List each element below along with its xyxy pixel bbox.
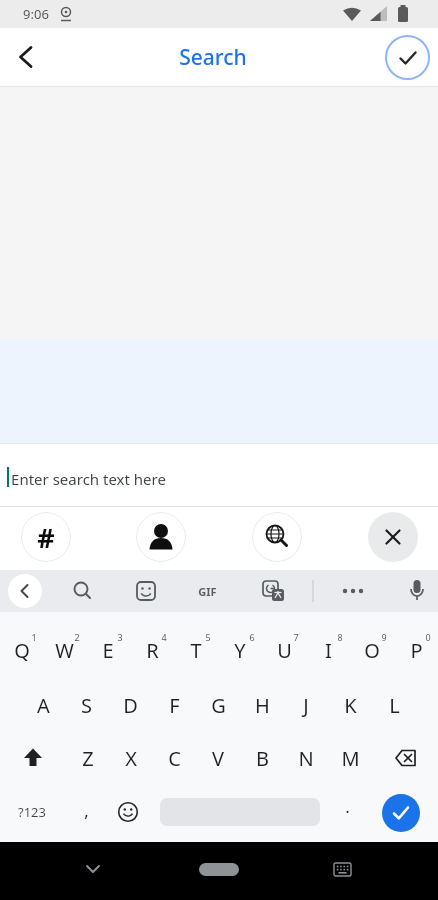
staticText: T: [190, 637, 202, 664]
staticText: .: [345, 795, 350, 818]
staticText: J: [303, 692, 309, 719]
staticText: N: [298, 745, 314, 772]
staticText: Q: [14, 637, 30, 664]
staticText: #: [37, 519, 55, 556]
staticText: 8: [337, 631, 343, 643]
staticText: 7: [293, 631, 299, 643]
staticText: Y: [234, 637, 246, 664]
staticText: ,: [84, 799, 89, 822]
staticText: 2: [74, 631, 80, 643]
staticText: 4: [161, 631, 167, 643]
staticText: K: [344, 692, 357, 719]
staticText: 0: [425, 631, 431, 643]
staticText: H: [255, 692, 270, 719]
staticText: E: [102, 637, 114, 664]
staticText: 3: [117, 631, 123, 643]
staticText: D: [123, 692, 138, 719]
staticText: I: [325, 637, 332, 664]
staticText: C: [168, 745, 181, 772]
staticText: A: [37, 692, 50, 719]
staticText: B: [256, 745, 269, 772]
staticText: 6: [249, 631, 255, 643]
staticText: 1: [31, 631, 37, 643]
staticText: Enter search text here: [11, 469, 166, 489]
staticText: 5: [205, 631, 211, 643]
staticText: F: [169, 692, 180, 719]
staticText: S: [81, 692, 92, 719]
staticText: X: [125, 745, 137, 772]
staticText: W: [55, 637, 74, 664]
staticText: 9:06: [23, 5, 49, 23]
staticText: Search: [179, 43, 247, 72]
staticText: P: [410, 637, 423, 664]
staticText: R: [146, 637, 159, 664]
staticText: 9: [381, 631, 387, 643]
staticText: GIF: [198, 584, 217, 599]
staticText: O: [364, 637, 380, 664]
staticText: M: [341, 745, 360, 772]
staticText: U: [277, 637, 292, 664]
staticText: Z: [82, 745, 94, 772]
staticText: L: [389, 692, 400, 719]
staticText: G: [211, 692, 226, 719]
staticText: ?123: [18, 803, 46, 821]
staticText: V: [212, 745, 224, 772]
